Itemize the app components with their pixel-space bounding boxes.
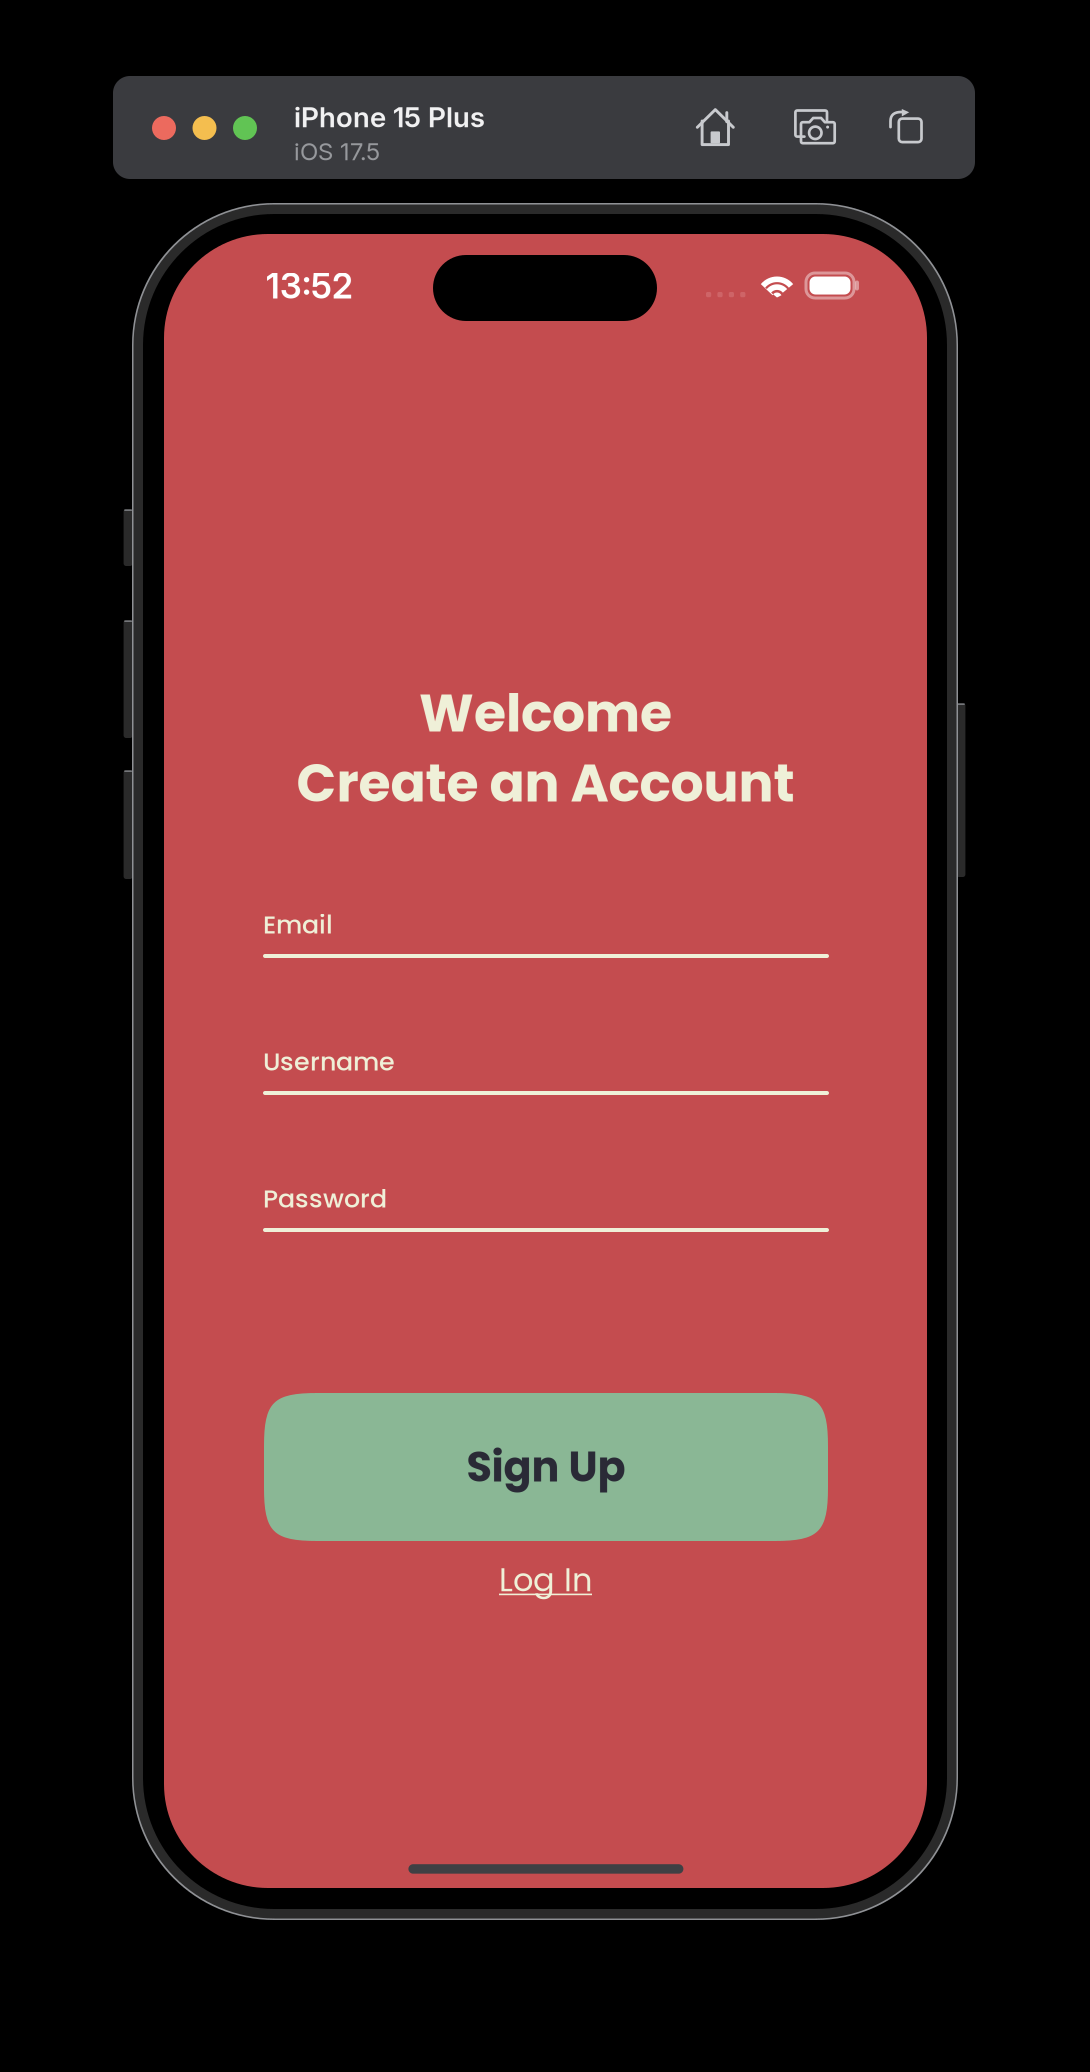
staticText: Log In: [499, 1558, 592, 1602]
staticText: iPhone 15 Plus: [294, 100, 485, 134]
staticText: 13:52: [266, 265, 353, 307]
button[interactable]: Home: [679, 76, 751, 179]
staticText: iOS 17.5: [294, 137, 380, 166]
button[interactable]: Log In: [164, 1552, 927, 1608]
button[interactable]: Sign Up: [264, 1393, 828, 1541]
staticText: Sign Up: [466, 1438, 625, 1496]
staticText: Welcome: [419, 677, 672, 750]
button[interactable]: Share: [869, 76, 941, 179]
staticText: Create an Account: [296, 747, 794, 820]
staticText: Password: [263, 1181, 387, 1216]
button[interactable]: Screenshot: [779, 76, 851, 179]
staticText: Username: [263, 1044, 395, 1079]
staticText: Email: [263, 907, 333, 942]
